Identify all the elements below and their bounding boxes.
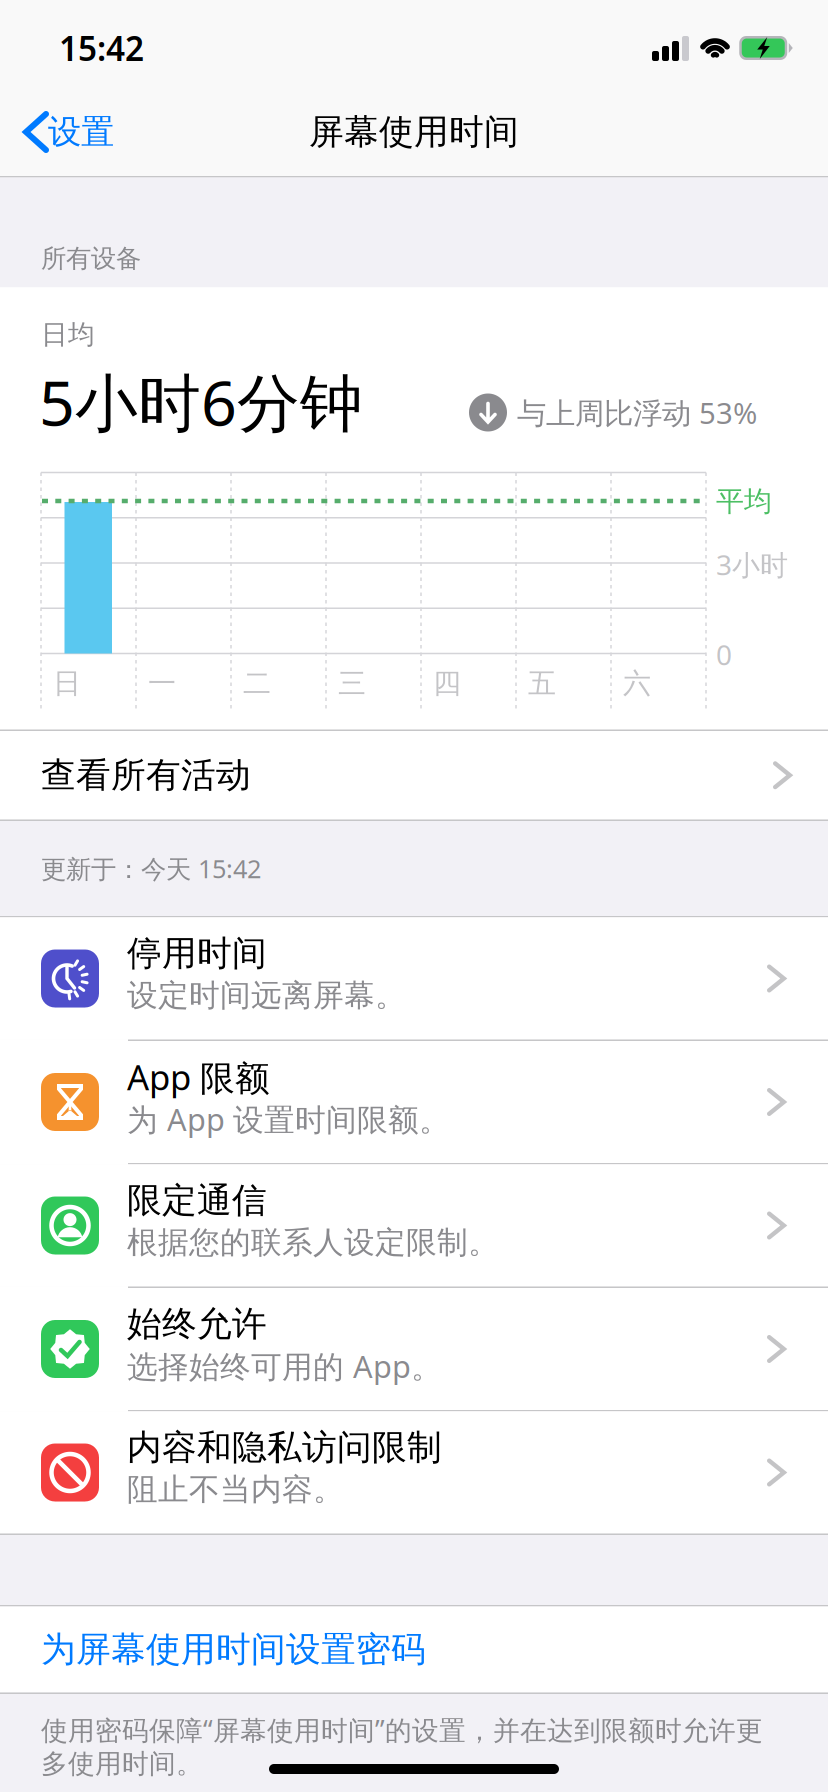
staticText: 停用时间 bbox=[127, 932, 267, 975]
staticText: 选择始终可用的 App。 bbox=[127, 1346, 442, 1386]
staticText: 3小时 bbox=[716, 546, 788, 583]
staticText: 根据您的联系人设定限制。 bbox=[127, 1224, 499, 1261]
staticText: 为 App 设置时间限额。 bbox=[127, 1099, 450, 1139]
staticText: 设置 bbox=[48, 111, 114, 152]
button[interactable]: 为屏幕使用时间设置密码 bbox=[0, 1606, 828, 1692]
staticText: 平均 bbox=[716, 484, 772, 519]
staticText: 内容和隐私访问限制 bbox=[127, 1426, 442, 1469]
staticText: 日均 bbox=[41, 318, 95, 351]
staticText: 屏幕使用时间 bbox=[309, 111, 519, 153]
staticText: 15:42 bbox=[59, 26, 144, 70]
staticText: 5小时6分钟 bbox=[39, 360, 363, 443]
staticText: 与上周比浮动 53% bbox=[517, 393, 757, 432]
button[interactable]: 始终允许 bbox=[0, 1288, 828, 1410]
button[interactable]: 查看所有活动 bbox=[0, 731, 828, 819]
staticText: 三 bbox=[338, 666, 366, 701]
staticText: 日 bbox=[53, 666, 81, 701]
staticText: 查看所有活动 bbox=[41, 754, 251, 797]
button[interactable]: 内容和隐私访问限制 bbox=[0, 1411, 828, 1533]
staticText: 更新于：今天 15:42 bbox=[41, 852, 261, 885]
staticText: 一 bbox=[148, 666, 176, 701]
staticText: 六 bbox=[623, 666, 651, 701]
staticText: App 限额 bbox=[127, 1054, 270, 1100]
staticText: 使用密码保障“屏幕使用时间”的设置，并在达到限额时允许更多使用时间。 bbox=[41, 1712, 763, 1780]
staticText: 所有设备 bbox=[41, 243, 141, 274]
staticText: 0 bbox=[716, 636, 732, 673]
button[interactable]: 限定通信 bbox=[0, 1164, 828, 1286]
staticText: 四 bbox=[433, 666, 461, 701]
staticText: 始终允许 bbox=[127, 1303, 267, 1345]
button[interactable]: 设置 bbox=[0, 88, 134, 176]
button[interactable]: 停用时间 bbox=[0, 917, 828, 1039]
staticText: 限定通信 bbox=[127, 1179, 267, 1222]
button[interactable]: App 限额 bbox=[0, 1041, 828, 1163]
staticText: 为屏幕使用时间设置密码 bbox=[41, 1628, 426, 1671]
staticText: 设定时间远离屏幕。 bbox=[127, 977, 406, 1014]
staticText: 阻止不当内容。 bbox=[127, 1471, 344, 1508]
staticText: 五 bbox=[528, 666, 556, 701]
staticText: 二 bbox=[243, 666, 271, 701]
